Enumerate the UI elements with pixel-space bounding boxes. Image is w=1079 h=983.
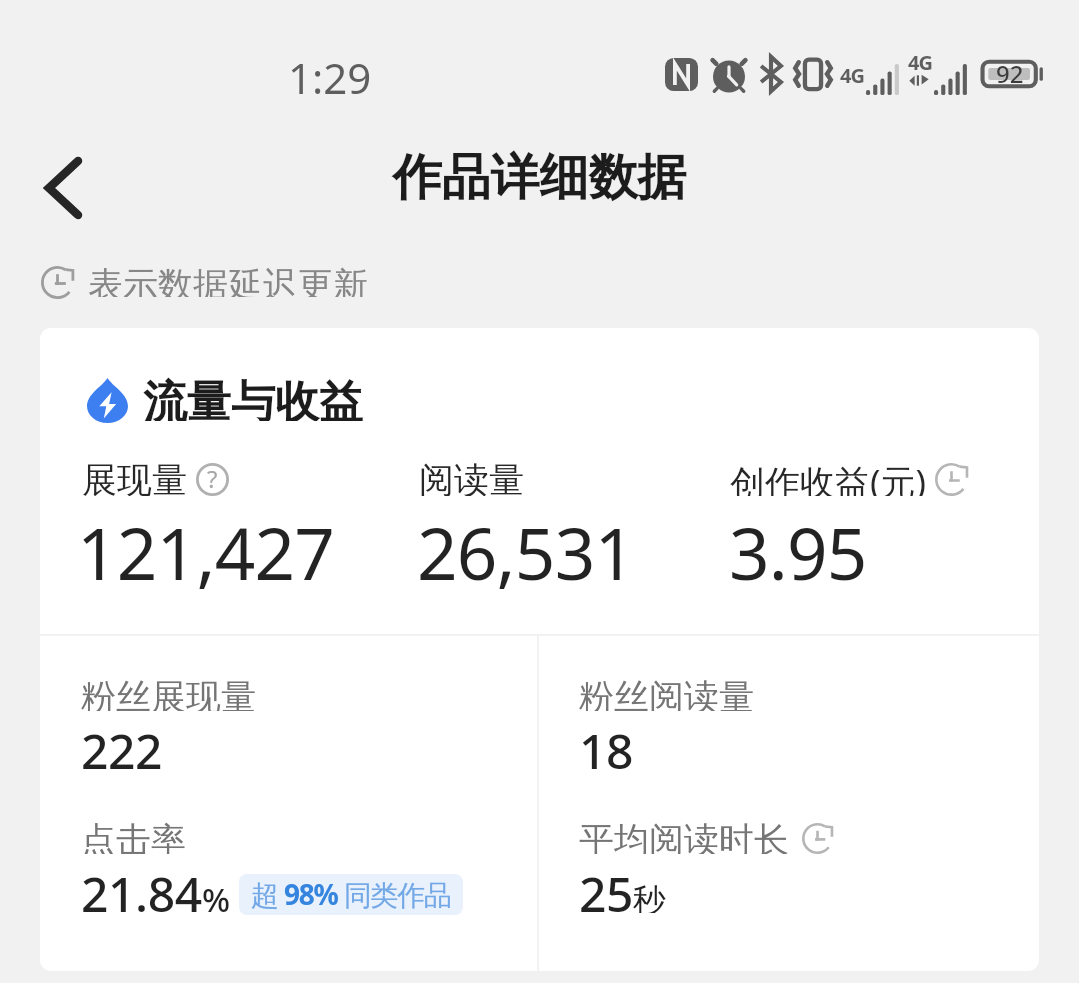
staticText: 粉丝展现量 (81, 675, 256, 711)
staticText: 21.84% (81, 861, 230, 913)
button[interactable]: 点击率 (81, 820, 521, 913)
staticText: 222 (81, 718, 163, 770)
button[interactable]: 创作收益(元) (730, 460, 1010, 601)
staticText: 平均阅读时长 (579, 818, 789, 854)
staticText: 粉丝阅读量 (579, 675, 754, 711)
staticText: 流量与收益 (143, 375, 363, 421)
staticText: 26,531 (417, 504, 635, 601)
staticText: 点击率 (81, 818, 186, 854)
staticText: 18 (579, 718, 634, 770)
staticText: 1:29 (288, 49, 372, 106)
staticText: 25秒 (579, 861, 666, 913)
staticText: 4G (908, 49, 932, 76)
button[interactable]: 表示数据延迟更新 (41, 265, 368, 299)
button[interactable]: 粉丝展现量 (81, 677, 521, 770)
staticText: 作品详细数据 (0, 147, 1079, 209)
button[interactable]: 阅读量 (419, 460, 724, 601)
staticText: 92 (996, 57, 1024, 90)
staticText: 4G (840, 62, 864, 89)
button[interactable]: 粉丝阅读量 (579, 677, 1019, 770)
staticText: 121,427 (77, 504, 335, 601)
staticText: 3.95 (729, 504, 867, 601)
staticText: 超 98% 同类作品 (251, 875, 451, 913)
staticText: ? (207, 462, 218, 495)
staticText: 创作收益(元) (730, 458, 927, 496)
button[interactable]: Back (23, 148, 103, 228)
button[interactable]: 平均阅读时长 (579, 820, 1019, 913)
staticText: 展现量 (82, 458, 187, 496)
staticText: 阅读量 (419, 458, 524, 496)
button[interactable]: About impressions (196, 463, 229, 496)
button[interactable]: 展现量 (82, 460, 412, 601)
staticText: 表示数据延迟更新 (88, 263, 368, 297)
